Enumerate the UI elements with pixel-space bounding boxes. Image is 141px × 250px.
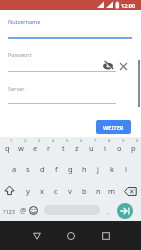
- button[interactable]: WEITER: [96, 120, 131, 134]
- button[interactable]: [44, 205, 100, 215]
- button[interactable]: p: [126, 139, 140, 157]
- staticText: 3: [38, 138, 41, 144]
- staticText: u: [89, 143, 94, 153]
- button[interactable]: i: [98, 139, 112, 157]
- button[interactable]: [4, 185, 15, 196]
- button[interactable]: [124, 187, 137, 196]
- staticText: w: [18, 143, 24, 153]
- button[interactable]: c: [49, 182, 63, 200]
- staticText: 12:00: [121, 2, 136, 9]
- staticText: 2: [24, 138, 27, 144]
- button[interactable]: h: [77, 160, 91, 178]
- staticText: Server: [8, 85, 25, 92]
- staticText: ?123: [3, 208, 15, 215]
- staticText: k: [110, 164, 115, 174]
- button[interactable]: g: [63, 160, 77, 178]
- staticText: a: [12, 164, 17, 174]
- button[interactable]: d: [35, 160, 49, 178]
- button[interactable]: k: [105, 160, 119, 178]
- staticText: 4: [52, 138, 55, 144]
- staticText: c: [54, 186, 58, 196]
- button[interactable]: l: [119, 160, 133, 178]
- button[interactable]: r: [42, 139, 56, 157]
- staticText: s: [26, 164, 30, 174]
- button[interactable]: z: [70, 139, 84, 157]
- button[interactable]: e: [28, 139, 42, 157]
- button[interactable]: [33, 232, 41, 240]
- button[interactable]: [102, 232, 110, 240]
- button[interactable]: [29, 206, 38, 215]
- staticText: d: [40, 164, 45, 174]
- button[interactable]: w: [14, 139, 28, 157]
- button[interactable]: @: [16, 202, 30, 220]
- staticText: 8: [108, 138, 111, 144]
- staticText: 1: [10, 138, 13, 144]
- staticText: m: [108, 186, 116, 196]
- staticText: x: [40, 186, 44, 196]
- staticText: q: [5, 143, 10, 153]
- button[interactable]: q: [0, 139, 14, 157]
- staticText: l: [125, 164, 127, 174]
- staticText: @: [20, 206, 27, 216]
- button[interactable]: a: [7, 160, 21, 178]
- staticText: r: [47, 143, 51, 153]
- button[interactable]: j: [91, 160, 105, 178]
- staticText: .: [107, 206, 110, 216]
- staticText: 9: [122, 138, 125, 144]
- staticText: z: [75, 143, 79, 153]
- staticText: g: [68, 164, 73, 174]
- button[interactable]: v: [63, 182, 77, 200]
- button[interactable]: t: [56, 139, 70, 157]
- staticText: 5: [66, 138, 69, 144]
- button[interactable]: [8, 94, 116, 104]
- button[interactable]: y: [21, 182, 35, 200]
- staticText: n: [96, 186, 101, 196]
- staticText: t: [62, 143, 65, 153]
- staticText: v: [68, 186, 72, 196]
- button[interactable]: ?123: [1, 204, 17, 218]
- button[interactable]: s: [21, 160, 35, 178]
- staticText: 0: [136, 138, 139, 144]
- staticText: p: [131, 143, 136, 153]
- staticText: y: [26, 186, 30, 196]
- button[interactable]: b: [77, 182, 91, 200]
- staticText: 7: [94, 138, 97, 144]
- button[interactable]: u: [84, 139, 98, 157]
- staticText: h: [82, 164, 87, 174]
- button[interactable]: [8, 29, 132, 39]
- staticText: e: [33, 143, 38, 153]
- button[interactable]: [102, 60, 114, 72]
- button[interactable]: [119, 62, 128, 71]
- staticText: b: [82, 186, 87, 196]
- staticText: Nutzername: [8, 18, 41, 25]
- staticText: WEITER: [103, 124, 124, 131]
- button[interactable]: x: [35, 182, 49, 200]
- button[interactable]: .: [101, 202, 115, 220]
- button[interactable]: [67, 232, 75, 240]
- button[interactable]: m: [105, 182, 119, 200]
- staticText: i: [104, 143, 106, 153]
- staticText: j: [97, 164, 99, 174]
- staticText: f: [55, 164, 58, 174]
- staticText: Passwort: [8, 51, 32, 58]
- button[interactable]: f: [49, 160, 63, 178]
- button[interactable]: o: [112, 139, 126, 157]
- button[interactable]: n: [91, 182, 105, 200]
- staticText: o: [117, 143, 122, 153]
- staticText: 6: [80, 138, 83, 144]
- button[interactable]: [8, 62, 116, 72]
- button[interactable]: [117, 203, 133, 219]
